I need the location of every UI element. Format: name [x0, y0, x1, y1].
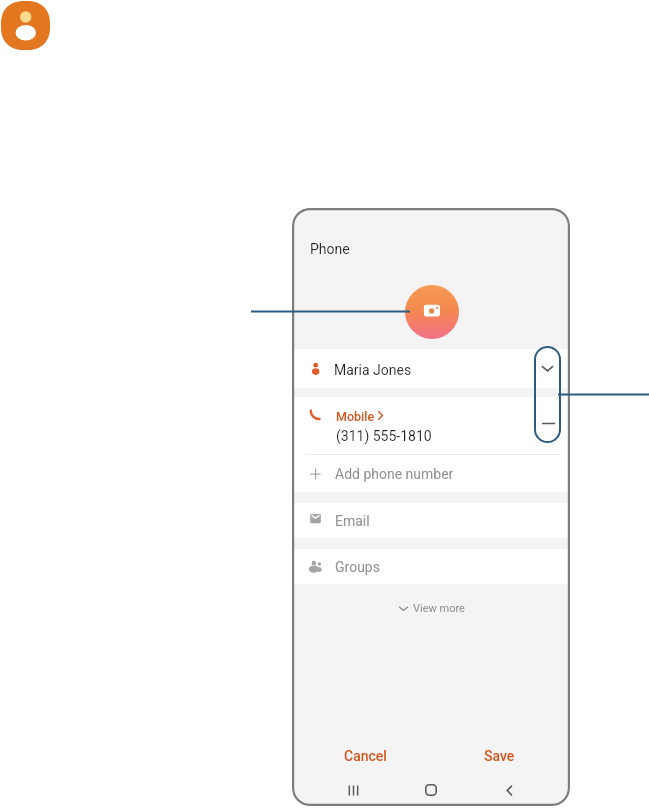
- staticText: (311) 555-1810: [336, 428, 432, 444]
- staticText: Save: [484, 748, 515, 764]
- staticText: View more: [413, 602, 465, 615]
- button[interactable]: Back: [499, 780, 519, 800]
- staticText: Email: [335, 513, 370, 529]
- staticText: Mobile: [336, 409, 375, 424]
- staticText: Phone: [310, 241, 350, 257]
- staticText: Add phone number: [335, 466, 454, 482]
- button[interactable]: Mobile: [292, 397, 570, 453]
- staticText: Maria Jones: [334, 362, 412, 378]
- button[interactable]: Cancel: [344, 746, 387, 766]
- button[interactable]: Contacts app icon: [1, 1, 50, 50]
- button[interactable]: Expand name: [537, 358, 557, 378]
- button[interactable]: Groups: [292, 549, 570, 584]
- button[interactable]: Email: [292, 503, 570, 538]
- staticText: Cancel: [344, 748, 387, 764]
- button[interactable]: Remove phone number: [538, 413, 558, 433]
- button[interactable]: Home: [421, 780, 441, 800]
- button[interactable]: Add phone number: [292, 454, 570, 492]
- button[interactable]: Recents: [343, 780, 363, 800]
- staticText: Groups: [335, 559, 380, 575]
- button[interactable]: Maria Jones: [292, 349, 570, 388]
- button[interactable]: Change photo: [405, 285, 459, 339]
- button[interactable]: Save: [484, 746, 515, 766]
- button[interactable]: View more: [394, 598, 468, 620]
